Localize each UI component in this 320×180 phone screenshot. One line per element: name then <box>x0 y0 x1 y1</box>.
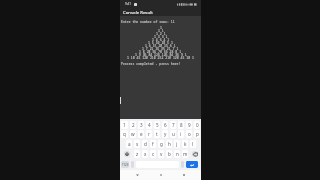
staticText: Enter the number of rows: 11 <box>121 20 175 24</box>
staticText: o <box>188 131 191 137</box>
staticText: 1 9 36 84 126 126 84 36 9 1 <box>135 53 187 56</box>
button[interactable]: l <box>190 140 196 148</box>
button[interactable]: 0 <box>194 121 200 129</box>
staticText: 7 <box>172 122 175 128</box>
staticText: 1 6 15 20 15 6 1 <box>145 44 176 47</box>
button[interactable]: y <box>162 130 168 138</box>
button[interactable]: c <box>150 150 156 158</box>
button[interactable]: Enter <box>186 161 198 168</box>
button[interactable]: p <box>194 130 200 138</box>
button[interactable]: b <box>166 150 172 158</box>
staticText: h <box>168 141 171 147</box>
staticText: 1 <box>123 122 126 128</box>
button[interactable]: Emoji <box>131 161 134 168</box>
button[interactable]: 1 <box>121 121 128 129</box>
button[interactable]: i <box>178 130 184 138</box>
staticText: 8 <box>180 122 183 128</box>
staticText: m <box>183 151 188 157</box>
button[interactable]: s <box>134 140 140 148</box>
button[interactable]: Home <box>154 170 168 180</box>
button[interactable]: Shift <box>121 150 132 158</box>
staticText: 0 <box>196 122 199 128</box>
staticText: t <box>156 131 158 137</box>
button[interactable]: g <box>158 140 164 148</box>
staticText: i <box>180 131 182 137</box>
staticText: n <box>176 151 179 157</box>
button[interactable]: r <box>146 130 152 138</box>
button[interactable]: Recents <box>177 170 191 180</box>
staticText: 1 10 45 120 210 252 210 120 45 10 1 <box>127 56 194 59</box>
button[interactable]: 3 <box>138 121 144 129</box>
button[interactable]: f <box>150 140 156 148</box>
button[interactable]: Backspace <box>190 150 200 158</box>
staticText: 5 <box>156 122 159 128</box>
button[interactable]: t <box>154 130 160 138</box>
staticText: 3 <box>140 122 143 128</box>
staticText: b <box>168 151 171 157</box>
button[interactable]: d <box>142 140 148 148</box>
button[interactable]: w <box>130 130 136 138</box>
staticText: 1 <box>160 26 162 29</box>
button[interactable]: h <box>166 140 172 148</box>
button[interactable]: m <box>182 150 188 158</box>
button[interactable]: 6 <box>162 121 168 129</box>
staticText: z <box>136 151 139 157</box>
button[interactable]: j <box>174 140 180 148</box>
staticText: e <box>140 131 143 137</box>
button[interactable]: z <box>134 150 140 158</box>
staticText: k <box>184 141 187 147</box>
staticText: 9 <box>188 122 191 128</box>
staticText: y <box>164 131 167 137</box>
staticText: a <box>128 141 131 147</box>
button[interactable]: n <box>174 150 180 158</box>
staticText: q <box>123 131 126 137</box>
button[interactable]: a <box>126 140 132 148</box>
staticText: p <box>196 131 199 137</box>
staticText: 1 3 3 1 <box>154 35 168 38</box>
button[interactable]: u <box>170 130 176 138</box>
button[interactable]: Back <box>130 170 144 180</box>
staticText: 1 5 10 10 5 1 <box>148 41 173 44</box>
staticText: g <box>160 141 163 147</box>
staticText: d <box>144 141 147 147</box>
staticText: 4 <box>148 122 151 128</box>
staticText: f <box>152 141 154 147</box>
staticText: x <box>144 151 147 157</box>
button[interactable]: ?123 <box>121 161 129 168</box>
staticText: 1 1 <box>158 29 164 32</box>
button[interactable]: 7 <box>170 121 176 129</box>
staticText: ?123 <box>122 163 129 167</box>
button[interactable]: v <box>158 150 164 158</box>
button[interactable]: Period <box>181 161 184 168</box>
button[interactable]: 5 <box>154 121 160 129</box>
staticText: 6 <box>164 122 167 128</box>
staticText: 9:41 <box>125 2 132 6</box>
staticText: v <box>160 151 163 157</box>
button[interactable]: x <box>142 150 148 158</box>
staticText: Process completed - press here! <box>121 62 181 66</box>
button[interactable]: 8 <box>178 121 184 129</box>
button[interactable]: q <box>121 130 128 138</box>
staticText: l <box>192 141 194 147</box>
staticText: 1 4 6 4 1 <box>152 38 170 41</box>
staticText: u <box>172 131 175 137</box>
staticText: c <box>152 151 155 157</box>
staticText: j <box>176 141 178 147</box>
staticText: r <box>148 131 150 137</box>
button[interactable]: o <box>186 130 192 138</box>
button[interactable]: e <box>138 130 144 138</box>
staticText: 2 <box>132 122 135 128</box>
staticText: Console Result <box>123 9 153 15</box>
staticText: w <box>131 131 135 137</box>
staticText: 1 2 1 <box>156 32 166 35</box>
button[interactable]: k <box>182 140 188 148</box>
button[interactable]: 2 <box>130 121 136 129</box>
staticText: 1 7 21 35 35 21 7 1 <box>142 47 179 50</box>
button[interactable]: 9 <box>186 121 192 129</box>
button[interactable]: 4 <box>146 121 152 129</box>
staticText: 1 8 28 56 70 56 28 8 1 <box>139 50 182 53</box>
staticText: s <box>136 141 139 147</box>
